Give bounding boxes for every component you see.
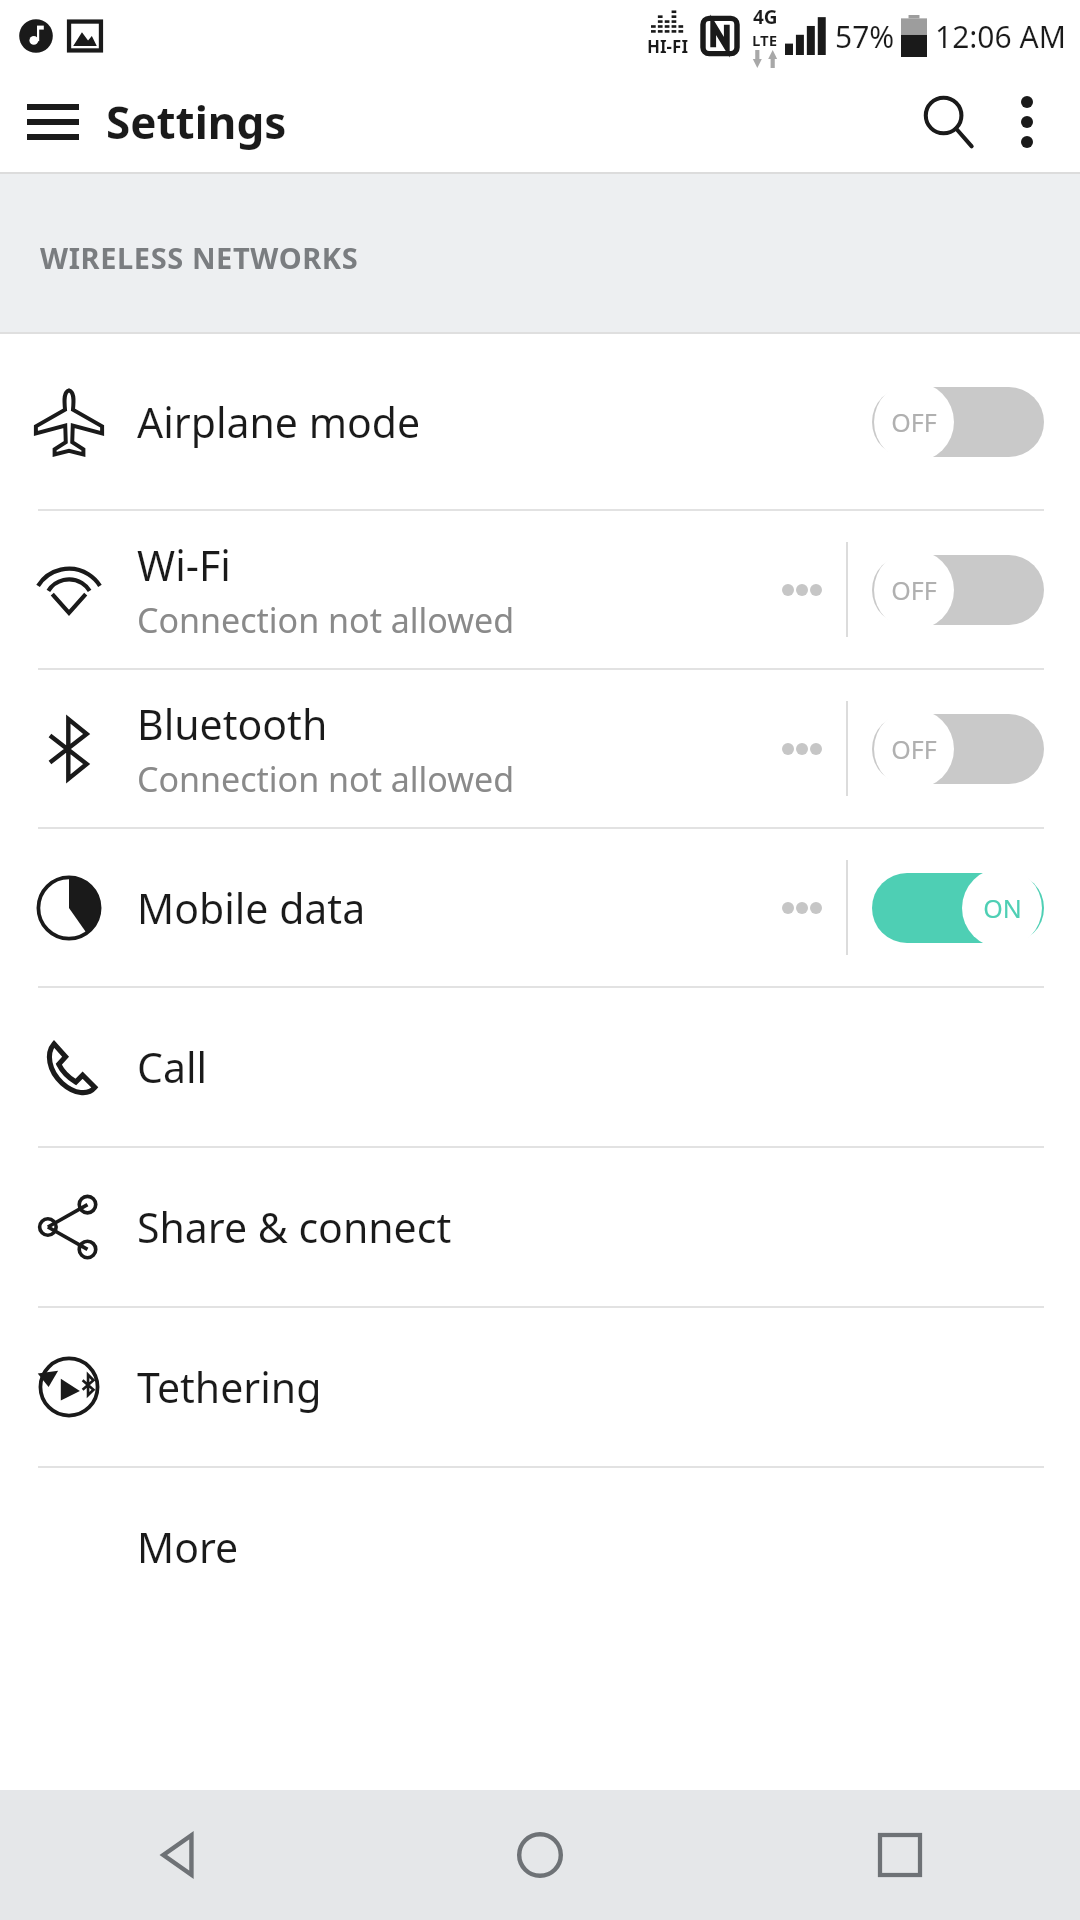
staticText: Connection not allowed bbox=[137, 597, 515, 643]
staticText: Call bbox=[137, 1039, 208, 1095]
button[interactable]: Call bbox=[0, 988, 1080, 1146]
staticText: Airplane mode bbox=[137, 394, 421, 450]
button[interactable]: More bbox=[0, 1468, 1080, 1626]
button[interactable]: Share & connect bbox=[0, 1148, 1080, 1306]
button[interactable]: More options bbox=[992, 87, 1062, 157]
button[interactable]: Toggle off bbox=[872, 549, 1044, 631]
staticText: Settings bbox=[106, 92, 287, 152]
staticText: 4G bbox=[753, 4, 778, 30]
button[interactable]: Wi-Fi bbox=[0, 511, 1080, 668]
button[interactable]: Open navigation menu bbox=[22, 91, 84, 153]
staticText: ON bbox=[983, 891, 1022, 925]
staticText: LTE bbox=[752, 30, 778, 50]
staticText: Mobile data bbox=[137, 880, 366, 936]
staticText: More bbox=[137, 1519, 239, 1575]
staticText: Wi-Fi bbox=[137, 537, 231, 593]
staticText: Share & connect bbox=[137, 1199, 452, 1255]
staticText: OFF bbox=[891, 405, 937, 439]
button[interactable]: Toggle off bbox=[872, 708, 1044, 790]
button[interactable]: Toggle on bbox=[872, 867, 1044, 949]
staticText: Connection not allowed bbox=[137, 756, 515, 802]
staticText: HI-FI bbox=[647, 35, 689, 58]
button[interactable]: Back bbox=[0, 1790, 360, 1920]
button[interactable]: Bluetooth bbox=[0, 670, 1080, 827]
staticText: Bluetooth bbox=[137, 696, 328, 752]
button[interactable]: Tethering bbox=[0, 1308, 1080, 1466]
staticText: 57% bbox=[835, 16, 895, 57]
staticText: Tethering bbox=[137, 1359, 322, 1415]
button[interactable]: Mobile data bbox=[0, 829, 1080, 986]
staticText: 12:06 AM bbox=[935, 16, 1066, 57]
button[interactable]: Search bbox=[906, 79, 992, 165]
staticText: OFF bbox=[891, 732, 937, 766]
button[interactable]: Airplane mode bbox=[0, 334, 1080, 509]
button[interactable]: Toggle off bbox=[872, 381, 1044, 463]
staticText: WIRELESS NETWORKS bbox=[40, 238, 359, 277]
staticText: OFF bbox=[891, 573, 937, 607]
button[interactable]: Recent apps bbox=[720, 1790, 1080, 1920]
button[interactable]: Home bbox=[360, 1790, 720, 1920]
